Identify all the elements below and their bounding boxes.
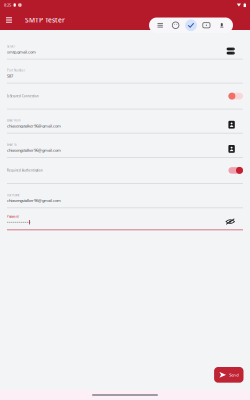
button[interactable]: Required Authentication [0, 158, 250, 184]
button[interactable]: Menu [152, 17, 168, 33]
staticText: Required Authentication [7, 169, 43, 172]
staticText: Username [7, 193, 20, 197]
staticText: Email From [7, 119, 20, 122]
button[interactable]: Camera [199, 17, 214, 33]
staticText: Password [7, 215, 19, 218]
button[interactable]: Menu [0, 10, 25, 30]
button[interactable]: Is Secured Connection [0, 83, 250, 109]
staticText: Is Secured Connection [7, 94, 39, 98]
button[interactable]: Emoji [168, 17, 183, 33]
button[interactable]: Port Number [0, 59, 250, 83]
button[interactable]: Send [214, 367, 243, 383]
button[interactable]: Voice input [214, 17, 229, 33]
staticText: •••••••••••• [7, 220, 31, 225]
staticText: Port Number [7, 69, 25, 72]
staticText: Email To [7, 143, 17, 146]
button[interactable]: Done [183, 17, 199, 33]
staticText: chiasengstalker96@gmail.com [7, 123, 61, 129]
staticText: smtp.gmail.com [7, 49, 36, 54]
button[interactable]: Server [0, 31, 250, 59]
staticText: Server [7, 45, 15, 48]
staticText: chiasengstalker96@gmail.com [7, 147, 61, 153]
button[interactable]: Username [0, 184, 250, 208]
staticText: 8:25 [4, 2, 11, 8]
staticText: Send [229, 372, 238, 377]
staticText: 587 [7, 73, 13, 78]
button[interactable]: Email From [0, 109, 250, 134]
button[interactable]: Password [0, 208, 250, 230]
staticText: chiasengstalker96@gmail.com [7, 198, 61, 203]
button[interactable]: Email To [0, 134, 250, 158]
staticText: SMTP Tester [25, 16, 65, 24]
